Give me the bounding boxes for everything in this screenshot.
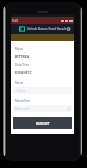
staticText: 9:41 [12, 19, 19, 23]
staticText: Movie [15, 81, 24, 85]
staticText: Movie [15, 47, 24, 51]
button[interactable]: BUDGET [13, 117, 72, 129]
staticText: DOSE/RTC [15, 70, 32, 75]
button[interactable]: Select [13, 87, 72, 94]
button[interactable]: Ticket [19, 26, 25, 32]
button[interactable]: Enter code [13, 105, 72, 112]
staticText: BUDGET [36, 121, 50, 126]
staticText: Unlock Bonus Food Vouch [27, 27, 66, 31]
staticText: Enter code [15, 107, 30, 111]
staticText: BITTREA [15, 54, 30, 59]
staticText: Movie/Seat [15, 99, 31, 103]
staticText: Date/Time [15, 63, 30, 67]
button[interactable]: Settings [66, 26, 71, 32]
staticText: Select [17, 89, 26, 93]
